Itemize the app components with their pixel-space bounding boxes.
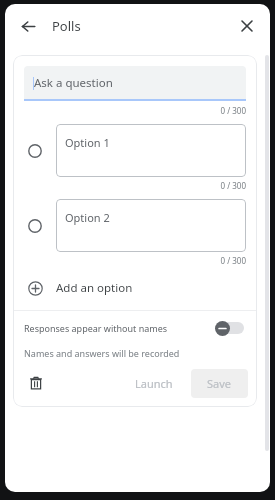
staticText: 0 / 300 [13,180,246,191]
staticText: Save [207,376,232,391]
button[interactable]: Back [14,12,42,40]
button[interactable]: Close [233,12,261,40]
staticText: 0 / 300 [24,105,246,116]
staticText: Option 2 [65,210,110,225]
staticText: Ask a question [34,75,113,91]
staticText: Names and answers will be recorded [24,347,180,359]
button[interactable]: Launch [123,369,185,398]
button[interactable]: Option 1 [56,124,246,177]
button[interactable]: Ask a question [24,66,246,99]
staticText: Polls [52,17,81,35]
button[interactable]: Delete [22,369,50,397]
button[interactable]: Select Option 2 [24,215,46,237]
button[interactable]: Select Option 1 [24,140,46,162]
staticText: Add an option [56,280,133,296]
staticText: 0 / 300 [13,255,246,266]
staticText: Launch [135,376,173,391]
button[interactable]: Add an option [13,266,257,310]
staticText: Responses appear without names [24,322,214,334]
button[interactable]: Save [191,369,248,398]
button[interactable]: Option 2 [56,199,246,252]
staticText: Option 1 [65,135,110,150]
button[interactable]: Responses appear without names [13,311,257,345]
